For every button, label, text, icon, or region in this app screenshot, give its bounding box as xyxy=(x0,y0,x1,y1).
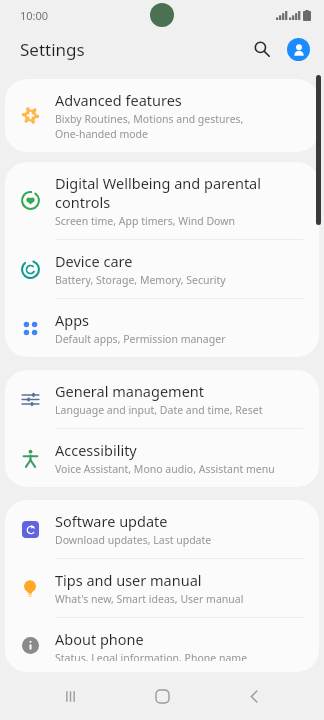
staticText: Advanced features xyxy=(55,90,182,110)
staticText: General management xyxy=(55,381,205,401)
staticText: Screen time, App timers, Wind Down xyxy=(55,214,235,228)
button[interactable]: Tips and user manual xyxy=(5,559,319,617)
button[interactable]: Advanced features xyxy=(5,79,319,152)
staticText: Accessibility xyxy=(55,440,137,460)
button[interactable]: Digital Wellbeing and parental controls xyxy=(5,162,319,239)
button[interactable]: Search xyxy=(247,34,277,64)
button[interactable]: Recent apps xyxy=(48,674,92,718)
button[interactable]: Device care xyxy=(5,240,319,298)
button[interactable]: Home xyxy=(140,674,184,718)
staticText: About phone xyxy=(55,629,144,649)
staticText: Software update xyxy=(55,511,168,531)
staticText: Voice Assistant, Mono audio, Assistant m… xyxy=(55,462,275,476)
staticText: Default apps, Permission manager xyxy=(55,332,226,346)
staticText: Status, Legal information, Phone name xyxy=(55,651,248,661)
button[interactable]: Back xyxy=(232,674,276,718)
button[interactable]: Accessibility xyxy=(5,429,319,487)
staticText: Bixby Routines, Motions and gestures, On… xyxy=(55,112,244,141)
button[interactable]: About phone xyxy=(5,618,319,672)
staticText: Digital Wellbeing and parental controls xyxy=(55,173,261,212)
button[interactable]: General management xyxy=(5,370,319,428)
staticText: What's new, Smart ideas, User manual xyxy=(55,592,244,606)
button[interactable]: Apps xyxy=(5,299,319,357)
staticText: Download updates, Last update xyxy=(55,533,212,547)
staticText: Battery, Storage, Memory, Security xyxy=(55,273,226,287)
staticText: 10:00 xyxy=(20,8,49,23)
staticText: Tips and user manual xyxy=(55,570,202,590)
staticText: Settings xyxy=(20,38,85,61)
button[interactable]: Account xyxy=(287,38,310,61)
button[interactable]: Software update xyxy=(5,500,319,558)
staticText: Language and input, Date and time, Reset xyxy=(55,403,263,417)
staticText: Device care xyxy=(55,251,133,271)
staticText: Apps xyxy=(55,310,90,330)
